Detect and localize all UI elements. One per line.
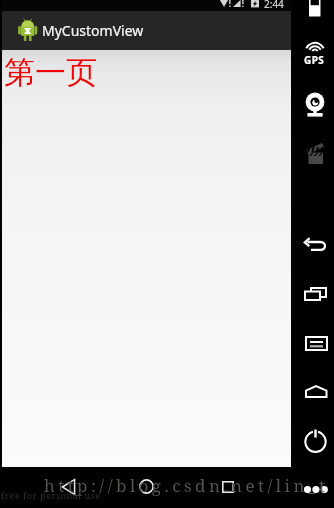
staticText: 2:44 — [264, 0, 284, 8]
button[interactable]: More options — [301, 478, 331, 500]
button[interactable]: Home — [125, 467, 167, 508]
staticText: GPS — [304, 53, 325, 67]
button[interactable]: Battery — [295, 0, 331, 20]
button[interactable]: Webcam — [303, 91, 329, 117]
button[interactable]: Back — [301, 235, 331, 257]
staticText: http://blog.csdn.net/lin_t — [44, 474, 329, 497]
button[interactable]: Back — [47, 467, 89, 508]
staticText: 第一页 — [4, 53, 97, 92]
button[interactable]: GPS — [295, 42, 331, 66]
staticText: MyCustomView — [42, 21, 144, 40]
button[interactable]: Recent apps — [207, 467, 249, 508]
button[interactable]: Home — [301, 382, 331, 402]
button[interactable]: Menu — [301, 333, 331, 353]
button[interactable]: Overview — [301, 284, 331, 304]
staticText: free for personal use — [1, 489, 101, 501]
button[interactable]: Record screen — [303, 141, 329, 167]
button[interactable]: Power — [301, 428, 331, 456]
